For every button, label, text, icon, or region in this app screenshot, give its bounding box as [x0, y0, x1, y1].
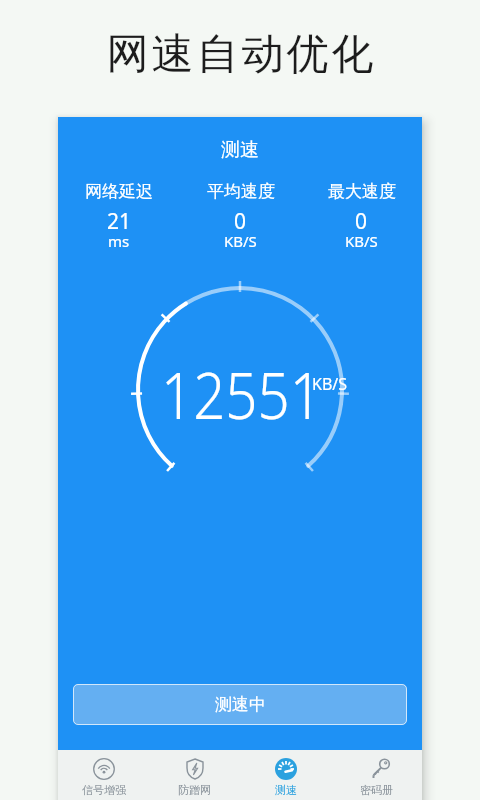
staticText: ms	[108, 231, 130, 249]
staticText: 测速	[275, 783, 297, 797]
staticText: KB/S	[345, 231, 378, 249]
staticText: 防蹭网	[178, 783, 211, 797]
staticText: 密码册	[360, 783, 393, 797]
staticText: 0	[234, 207, 247, 231]
staticText: 网络延迟	[85, 181, 153, 202]
button[interactable]: 信号增强	[58, 750, 149, 800]
staticText: 测速中	[215, 694, 266, 715]
button[interactable]: 防蹭网	[149, 750, 240, 800]
staticText: 12551	[161, 351, 322, 438]
staticText: 0	[355, 207, 368, 231]
staticText: 平均速度	[207, 181, 275, 202]
button[interactable]: 测速	[240, 750, 331, 800]
staticText: 网速自动优化	[105, 28, 375, 81]
staticText: 最大速度	[328, 181, 396, 202]
button[interactable]: 密码册	[331, 750, 422, 800]
staticText: KB/S	[312, 373, 348, 395]
staticText: KB/S	[224, 231, 257, 249]
staticText: 21	[107, 207, 132, 231]
staticText: 测速	[221, 138, 259, 162]
button[interactable]: 测速中	[73, 684, 407, 725]
staticText: 信号增强	[82, 783, 126, 797]
